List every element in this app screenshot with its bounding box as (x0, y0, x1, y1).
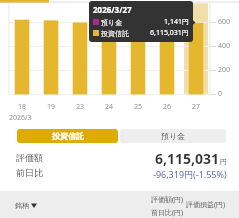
staticText: 投資信託 (52, 131, 84, 141)
staticText: 23 (76, 102, 85, 112)
staticText: 前日比 (16, 167, 43, 178)
staticText: 6,115,031 (155, 149, 220, 168)
staticText: -96,319円(-1.55%) (153, 168, 227, 180)
staticText: 預り金 (101, 18, 123, 27)
staticText: 600 (218, 17, 231, 27)
staticText: 預り金 (161, 131, 186, 141)
staticText: 400 (218, 41, 231, 51)
staticText: 円 (220, 157, 227, 166)
button[interactable]: 投資信託 (17, 129, 118, 143)
staticText: 200 (218, 65, 231, 75)
staticText: 19 (47, 102, 56, 112)
staticText: 投資信託 (101, 29, 129, 38)
staticText: 26 (163, 102, 172, 112)
staticText: 0 (218, 89, 223, 99)
staticText: 評価損益(円) (186, 200, 226, 210)
button[interactable]: 預り金 (120, 129, 226, 143)
staticText: 1,141円 (164, 17, 189, 27)
staticText: 6,115,031円 (150, 28, 189, 38)
staticText: 27 (192, 102, 201, 112)
staticText: 評価額 (16, 152, 43, 163)
staticText: 24 (105, 102, 114, 112)
staticText: 25 (134, 102, 143, 112)
staticText: 評価額(円) (151, 195, 184, 205)
staticText: 2026/3/27 (93, 4, 132, 15)
staticText: 銘柄 (15, 201, 29, 210)
staticText: 前日比(円) (151, 208, 184, 218)
button[interactable]: 銘柄 (15, 201, 37, 210)
staticText: 2026/3 (9, 113, 32, 123)
staticText: 18 (18, 102, 27, 112)
